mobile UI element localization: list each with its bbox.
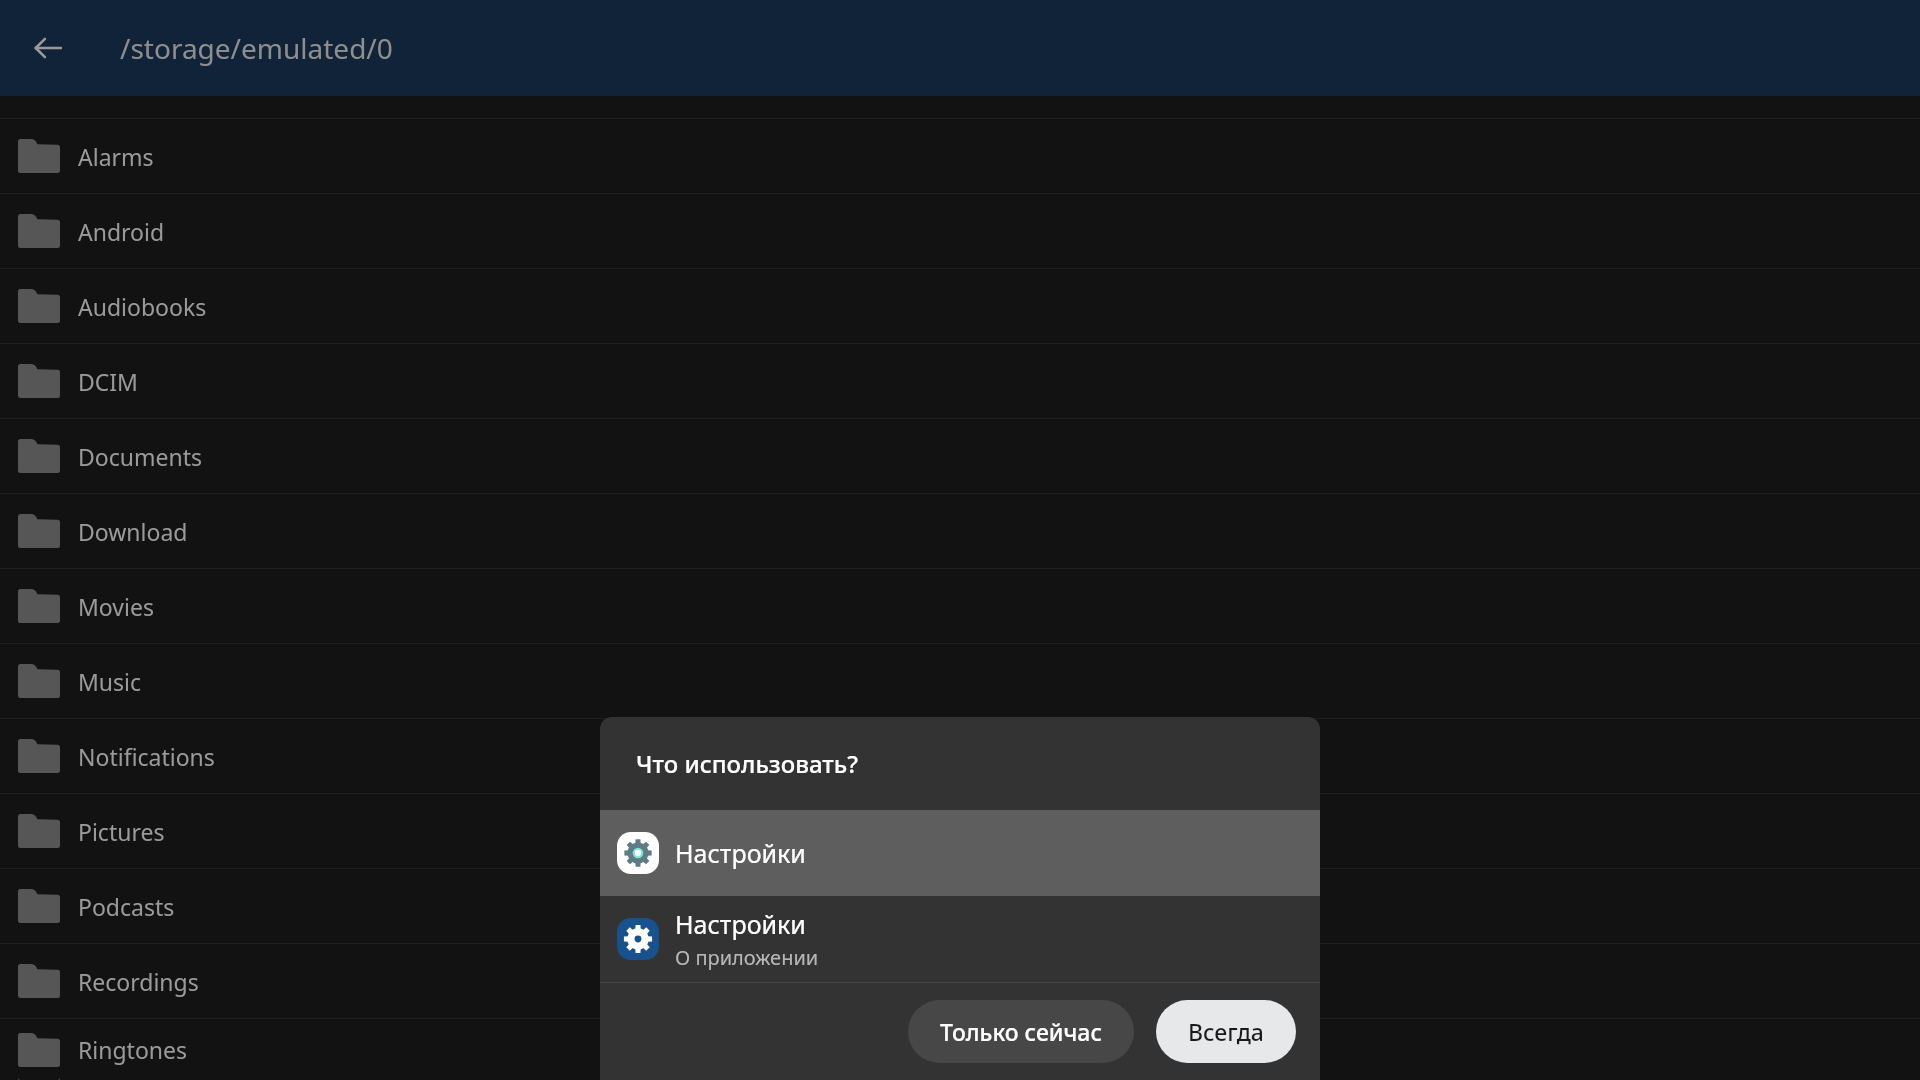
staticText: Podcasts bbox=[78, 891, 175, 922]
staticText: Music bbox=[78, 666, 142, 697]
staticText: Всегда bbox=[1188, 1016, 1264, 1047]
staticText: Только сейчас bbox=[940, 1016, 1102, 1047]
button[interactable]: Download bbox=[0, 494, 1920, 568]
staticText: Android bbox=[78, 216, 165, 247]
staticText: Pictures bbox=[78, 816, 165, 847]
button[interactable]: Настройки bbox=[600, 896, 1320, 982]
button[interactable]: Movies bbox=[0, 569, 1920, 643]
staticText: /storage/emulated/0 bbox=[120, 29, 393, 67]
staticText: Ringtones bbox=[78, 1034, 188, 1065]
staticText: Audiobooks bbox=[78, 291, 207, 322]
button[interactable]: Documents bbox=[0, 419, 1920, 493]
staticText: Настройки bbox=[675, 836, 806, 870]
button[interactable]: Audiobooks bbox=[0, 269, 1920, 343]
staticText: Alarms bbox=[78, 141, 154, 172]
button[interactable]: Music bbox=[0, 644, 1920, 718]
button[interactable]: Только сейчас bbox=[908, 1000, 1134, 1063]
staticText: О приложении bbox=[675, 944, 819, 971]
staticText: DCIM bbox=[78, 366, 138, 397]
staticText: Что использовать? bbox=[636, 747, 858, 780]
button[interactable]: DCIM bbox=[0, 344, 1920, 418]
staticText: Настройки bbox=[675, 907, 806, 941]
button[interactable]: Настройки bbox=[600, 810, 1320, 896]
button[interactable]: Podcasts bbox=[0, 869, 1920, 943]
staticText: Notifications bbox=[78, 741, 215, 772]
button[interactable]: Pictures bbox=[0, 794, 1920, 868]
staticText: Documents bbox=[78, 441, 202, 472]
staticText: Movies bbox=[78, 591, 154, 622]
button[interactable]: Alarms bbox=[0, 119, 1920, 193]
button[interactable]: Android bbox=[0, 194, 1920, 268]
button[interactable]: Всегда bbox=[1156, 1000, 1296, 1063]
button[interactable]: Notifications bbox=[0, 719, 1920, 793]
button[interactable]: Back bbox=[0, 0, 96, 96]
button[interactable]: Ringtones bbox=[0, 1019, 1920, 1080]
staticText: Download bbox=[78, 516, 188, 547]
button[interactable]: Recordings bbox=[0, 944, 1920, 1018]
staticText: Recordings bbox=[78, 966, 199, 997]
